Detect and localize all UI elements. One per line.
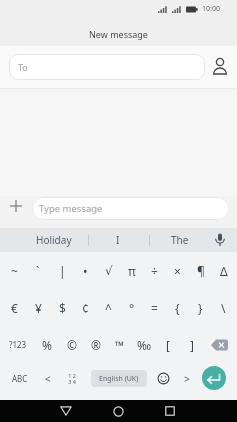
button[interactable]: ^ [97, 289, 120, 326]
staticText: ‰ [137, 337, 152, 353]
staticText: π [128, 263, 136, 279]
staticText: ° [129, 300, 135, 316]
button[interactable]: > [177, 363, 197, 394]
staticText: The [171, 233, 189, 247]
staticText: € [11, 300, 18, 316]
button[interactable]: Δ [212, 252, 235, 289]
button[interactable]: = [143, 289, 166, 326]
staticText: = [151, 300, 158, 316]
button[interactable]: ¶ [189, 252, 212, 289]
button[interactable] [9, 199, 23, 213]
staticText: Δ [220, 263, 228, 279]
button[interactable] [210, 228, 230, 252]
button[interactable]: π [120, 252, 143, 289]
button[interactable]: ABC [4, 363, 36, 394]
staticText: × [174, 263, 181, 279]
staticText: % [42, 337, 52, 353]
button[interactable]: ¢ [74, 289, 97, 326]
button[interactable]: \ [212, 289, 235, 326]
staticText: [ [166, 337, 170, 353]
staticText: I [116, 233, 120, 247]
button[interactable]: $ [50, 289, 74, 326]
button[interactable]: I [103, 228, 133, 252]
button[interactable]: Holiday [29, 228, 79, 252]
staticText: > [184, 372, 190, 386]
button[interactable]: ÷ [143, 252, 166, 289]
button[interactable]: ~ [2, 252, 26, 289]
staticText: ÷ [151, 263, 158, 279]
button[interactable]: < [38, 363, 58, 394]
button[interactable]: ° [120, 289, 143, 326]
button[interactable] [204, 326, 235, 363]
button[interactable] [211, 57, 229, 77]
staticText: | [59, 263, 66, 279]
button[interactable]: } [189, 289, 212, 326]
staticText: } [198, 300, 203, 316]
button[interactable]: | [50, 252, 74, 289]
button[interactable]: To [9, 54, 205, 80]
button[interactable]: ] [180, 326, 204, 363]
staticText: ¢ [82, 300, 89, 316]
staticText: ~ [11, 263, 18, 279]
staticText: √ [105, 264, 113, 278]
button[interactable] [156, 400, 184, 422]
staticText: To [18, 61, 28, 73]
staticText: • [83, 263, 88, 279]
staticText: ABC [12, 373, 28, 384]
button[interactable]: ¥ [26, 289, 50, 326]
staticText: ` [36, 263, 40, 279]
staticText: { [175, 300, 180, 316]
staticText: Holiday [36, 233, 72, 247]
button[interactable] [202, 366, 226, 390]
button[interactable]: [ [156, 326, 180, 363]
staticText: 1 2 3 4 [68, 372, 76, 386]
staticText: ¥ [35, 300, 42, 316]
button[interactable]: ® [84, 326, 108, 363]
button[interactable] [104, 400, 132, 422]
button[interactable]: ?123 [2, 326, 34, 363]
staticText: © [67, 337, 77, 353]
staticText: ^ [105, 300, 112, 316]
staticText: Type message [39, 202, 103, 215]
staticText: English (UK) [99, 374, 139, 384]
button[interactable]: √ [97, 252, 120, 289]
button[interactable]: ` [26, 252, 50, 289]
staticText: \ [221, 300, 226, 316]
staticText: $ [59, 300, 66, 316]
button[interactable]: The [160, 228, 200, 252]
button[interactable]: English (UK) [91, 370, 147, 387]
staticText: < [45, 372, 51, 386]
button[interactable]: ™ [108, 326, 132, 363]
button[interactable]: ‰ [132, 326, 156, 363]
button[interactable]: Type message [32, 197, 229, 220]
staticText: New message [89, 28, 148, 40]
button[interactable] [152, 363, 174, 394]
button[interactable]: € [2, 289, 26, 326]
staticText: ?123 [9, 339, 27, 350]
button[interactable]: % [34, 326, 59, 363]
staticText: 10:00 [202, 4, 220, 14]
staticText: ™ [115, 337, 125, 353]
button[interactable]: { [166, 289, 189, 326]
button[interactable]: • [74, 252, 97, 289]
button[interactable]: 1 2 3 4 [60, 363, 84, 394]
button[interactable] [52, 400, 80, 422]
button[interactable]: × [166, 252, 189, 289]
staticText: ] [190, 337, 194, 353]
button[interactable]: © [59, 326, 84, 363]
staticText: ® [91, 337, 101, 353]
staticText: ¶ [197, 263, 205, 279]
